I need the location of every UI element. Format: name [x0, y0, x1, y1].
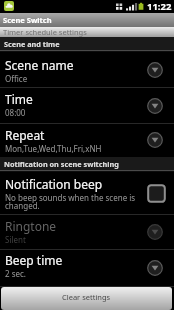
- staticText: Timer schedule settings: [3, 27, 87, 37]
- staticText: 08:00: [5, 107, 26, 118]
- staticText: Mon,Tue,Wed,Thu,Fri,xNH: [5, 143, 102, 154]
- button[interactable]: Ringtone: [0, 215, 174, 250]
- button[interactable]: Clear settings: [1, 287, 172, 310]
- staticText: 11:22: [147, 0, 172, 13]
- other: Ringtone: [147, 224, 163, 240]
- staticText: Scene Switch: [3, 15, 52, 25]
- staticText: 2 sec.: [5, 268, 26, 279]
- button[interactable]: Scene name: [0, 52, 174, 88]
- other: Scene name: [147, 62, 163, 78]
- staticText: Scene name: [5, 57, 74, 73]
- staticText: Scene and time: [4, 39, 60, 49]
- staticText: Office: [5, 73, 28, 84]
- staticText: Ringtone: [5, 218, 57, 234]
- staticText: Notification on scene switching: [4, 159, 119, 169]
- other: Repeat: [147, 132, 163, 148]
- staticText: Beep time: [5, 252, 63, 268]
- staticText: Notification beep: [5, 176, 103, 192]
- other: Time: [147, 98, 163, 114]
- button[interactable]: Time: [0, 88, 174, 124]
- button[interactable]: Beep time: [0, 250, 174, 287]
- button[interactable]: Repeat: [0, 124, 174, 157]
- other: Notification beep: [147, 184, 166, 203]
- other: Beep time: [147, 260, 163, 276]
- staticText: Repeat: [5, 127, 45, 143]
- staticText: Clear settings: [62, 292, 111, 302]
- button[interactable]: Notification beep: [0, 172, 174, 215]
- staticText: No beep sounds when the scene is changed…: [5, 192, 140, 211]
- staticText: Silent: [5, 234, 26, 245]
- staticText: Time: [5, 91, 33, 107]
